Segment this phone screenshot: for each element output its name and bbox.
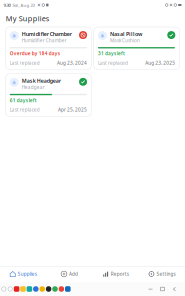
button[interactable]: Supplies: [0, 268, 46, 280]
staticText: 9:30: [3, 3, 10, 7]
staticText: Last replaced: [98, 60, 128, 65]
staticText: Reports: [111, 271, 129, 277]
button[interactable]: Humidifier Chamber: [5, 27, 91, 70]
staticText: Sat, Aug 23: [10, 3, 34, 7]
staticText: 61 days left: [10, 98, 37, 103]
staticText: Last replaced: [10, 107, 40, 112]
button[interactable]: Nasal Pillow: [94, 27, 180, 70]
staticText: Nasal Pillow: [110, 31, 142, 37]
button[interactable]: Add: [46, 268, 92, 280]
staticText: My Supplies: [6, 14, 50, 22]
staticText: Supplies: [18, 271, 37, 277]
staticText: Add: [69, 271, 78, 277]
staticText: Last replaced: [10, 60, 40, 65]
button[interactable]: Settings: [139, 268, 185, 280]
staticText: Aug 23, 2024: [57, 60, 87, 65]
button[interactable]: Reports: [92, 268, 139, 280]
staticText: Mask Cushion: [110, 38, 140, 43]
staticText: Settings: [156, 271, 175, 277]
staticText: Humidifier Chamber: [22, 31, 72, 37]
staticText: Aug 23, 2025: [145, 60, 175, 65]
staticText: 31 days left: [98, 51, 125, 56]
staticText: Apr 25, 2025: [58, 107, 87, 112]
staticText: Humidifier Chamber: [22, 38, 67, 43]
staticText: Overdue by 184 days: [10, 51, 60, 56]
button[interactable]: Mask Headgear: [5, 74, 91, 116]
staticText: Headgear: [22, 85, 45, 90]
staticText: Mask Headgear: [22, 78, 61, 84]
